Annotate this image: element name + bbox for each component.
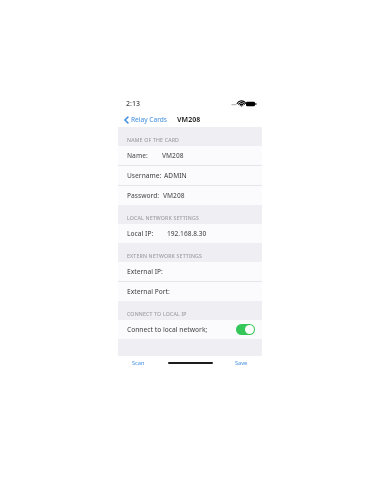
button[interactable]: Password: — [118, 186, 262, 205]
staticText: NAME OF THE CARD — [127, 136, 180, 143]
staticText: External IP: — [127, 267, 163, 276]
staticText: Name: — [127, 151, 148, 160]
staticText: ADMIN — [164, 171, 187, 180]
staticText: CONNECT TO LOCAL IP — [127, 310, 187, 317]
button[interactable]: Scan — [130, 357, 147, 369]
staticText: Connect to local network; — [127, 325, 208, 334]
staticText: External Port: — [127, 287, 170, 296]
button[interactable]: Connect to local network toggle, on — [236, 324, 255, 335]
button[interactable]: External IP: — [118, 262, 262, 282]
staticText: 2:13 — [126, 99, 140, 109]
staticText: Relay Cards — [131, 115, 167, 124]
staticText: LOCAL NETWORK SETTINGS — [127, 214, 199, 221]
button[interactable]: Local IP: — [118, 224, 262, 243]
button[interactable]: Relay Cards — [123, 113, 168, 126]
button[interactable]: External Port: — [118, 282, 262, 301]
staticText: Username: — [127, 171, 162, 180]
staticText: Password: — [127, 191, 160, 200]
button[interactable]: Connect to local network; — [118, 320, 262, 339]
staticText: VM208 — [162, 151, 184, 160]
staticText: 192.168.8.30 — [167, 229, 207, 238]
staticText: VM208 — [177, 115, 201, 125]
button[interactable]: Name: — [118, 146, 262, 166]
button[interactable]: Save — [233, 357, 250, 369]
button[interactable]: Username: — [118, 166, 262, 186]
staticText: VM208 — [163, 191, 185, 200]
staticText: Local IP: — [127, 229, 154, 238]
staticText: EXTERN NETWORK SETTINGS — [127, 252, 203, 259]
